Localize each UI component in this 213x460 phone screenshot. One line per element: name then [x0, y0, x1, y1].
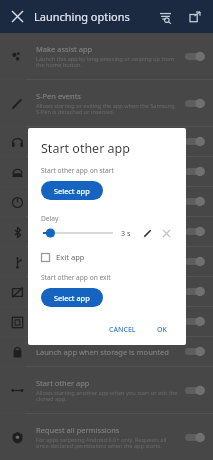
staticText: Launch app on screen off — [36, 287, 125, 297]
button[interactable]: Toggle — [185, 196, 205, 207]
button[interactable]: S-Pen events — [0, 80, 213, 126]
button[interactable]: Close — [0, 0, 34, 33]
button[interactable]: Select app — [41, 288, 103, 307]
button[interactable]: Launch app with Bluetooth — [0, 217, 213, 246]
staticText: Launch app with dock — [36, 167, 113, 177]
staticText: Launching options — [34, 9, 150, 24]
button[interactable]: Launch app with dock — [0, 157, 213, 186]
button[interactable]: Start other app — [0, 367, 213, 413]
button[interactable]: OK — [151, 321, 173, 339]
staticText: Start other app — [41, 140, 130, 157]
staticText: Start other app on start — [41, 166, 114, 175]
staticText: Start other app on exit — [41, 273, 111, 282]
staticText: 3 s — [121, 228, 131, 238]
button[interactable]: Clear delay — [159, 226, 173, 240]
button[interactable]: Toggle — [185, 385, 205, 396]
button[interactable]: Launch app on power — [0, 187, 213, 216]
staticText: Allows starting another app when you sta… — [36, 389, 179, 403]
staticText: Select app — [54, 293, 90, 303]
button[interactable]: Request all permissions — [0, 414, 213, 460]
staticText: Select app — [54, 186, 90, 196]
button[interactable]: Launch app when storage is mounted — [0, 337, 213, 366]
button[interactable]: Delay slider — [41, 226, 115, 240]
button[interactable]: Toggle — [185, 286, 205, 297]
button[interactable]: Edit delay — [140, 226, 154, 240]
button[interactable]: Toggle — [185, 226, 205, 237]
button[interactable]: More options — [180, 2, 210, 32]
button[interactable]: Toggle — [185, 316, 205, 327]
button[interactable]: Make assist app — [0, 33, 213, 79]
staticText: For apps targeting Android 6.0+ only. Re… — [36, 436, 179, 450]
button[interactable]: Launch app with NFC tag — [0, 307, 213, 336]
button[interactable]: Toggle — [185, 166, 205, 177]
staticText: Start other app — [36, 378, 90, 388]
staticText: Launch app with Bluetooth — [36, 227, 131, 237]
staticText: CANCEL — [109, 325, 136, 335]
staticText: Launch app on power — [36, 197, 113, 207]
button[interactable]: Launch app with headset — [0, 127, 213, 156]
button[interactable]: Toggle — [185, 136, 205, 147]
button[interactable]: Launch app on screen off — [0, 277, 213, 306]
staticText: Launch this app by long-pressing or swip… — [36, 55, 179, 69]
button[interactable]: Launch app with USB — [0, 247, 213, 276]
button[interactable]: Exit app — [41, 251, 85, 263]
button[interactable]: Select app — [41, 181, 103, 200]
staticText: Launch app with headset — [36, 137, 125, 147]
button[interactable]: CANCEL — [104, 321, 141, 339]
button[interactable]: Toggle — [185, 432, 205, 443]
button[interactable]: Toggle — [185, 98, 205, 109]
staticText: Launch app with USB — [36, 257, 111, 267]
button[interactable]: Toggle — [185, 346, 205, 357]
button[interactable]: Toggle — [185, 256, 205, 267]
staticText: S-Pen events — [36, 91, 81, 101]
button[interactable]: Search filter — [150, 2, 180, 32]
staticText: OK — [157, 325, 167, 335]
staticText: Delay — [41, 214, 59, 223]
staticText: Exit app — [56, 252, 85, 262]
staticText: Allows starting or exiting the app when … — [36, 102, 179, 116]
staticText: Make assist app — [36, 44, 93, 54]
button[interactable]: Toggle — [185, 51, 205, 62]
staticText: Launch app when storage is mounted — [36, 347, 169, 357]
staticText: Request all permissions — [36, 425, 120, 435]
